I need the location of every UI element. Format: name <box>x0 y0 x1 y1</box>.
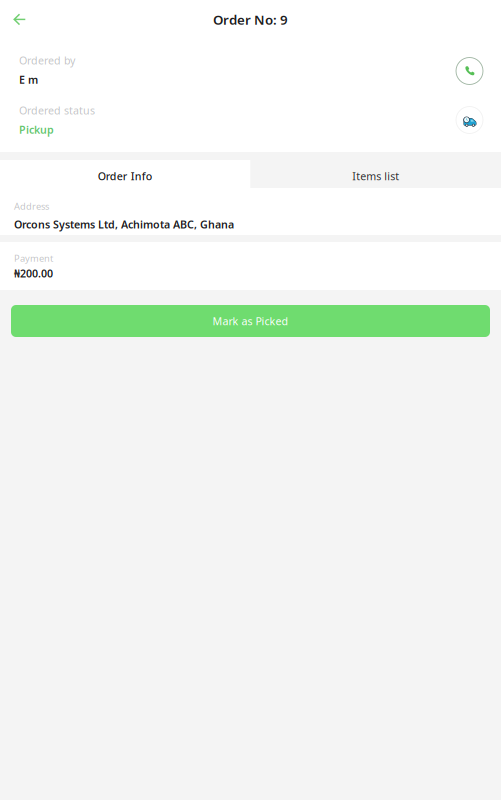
staticText: Address <box>14 200 49 212</box>
staticText: Ordered by <box>19 53 75 67</box>
button[interactable]: Mark as Picked <box>11 305 490 337</box>
staticText: Order No: 9 <box>213 11 288 28</box>
staticText: Ordered status <box>19 103 95 117</box>
staticText: Order Info <box>98 169 153 183</box>
staticText: Pickup <box>19 122 54 137</box>
button[interactable]: Delivery method <box>454 104 485 135</box>
button[interactable]: Order Info <box>0 160 250 188</box>
button[interactable]: Call customer <box>454 53 485 86</box>
staticText: Payment <box>14 252 53 264</box>
staticText: ₦200.00 <box>14 266 53 281</box>
staticText: Mark as Picked <box>212 314 288 328</box>
button[interactable]: Items list <box>250 160 501 188</box>
button[interactable]: Back <box>0 2 38 37</box>
staticText: E m <box>19 72 38 87</box>
staticText: Items list <box>352 169 399 183</box>
staticText: Orcons Systems Ltd, Achimota ABC, Ghana <box>14 217 234 232</box>
